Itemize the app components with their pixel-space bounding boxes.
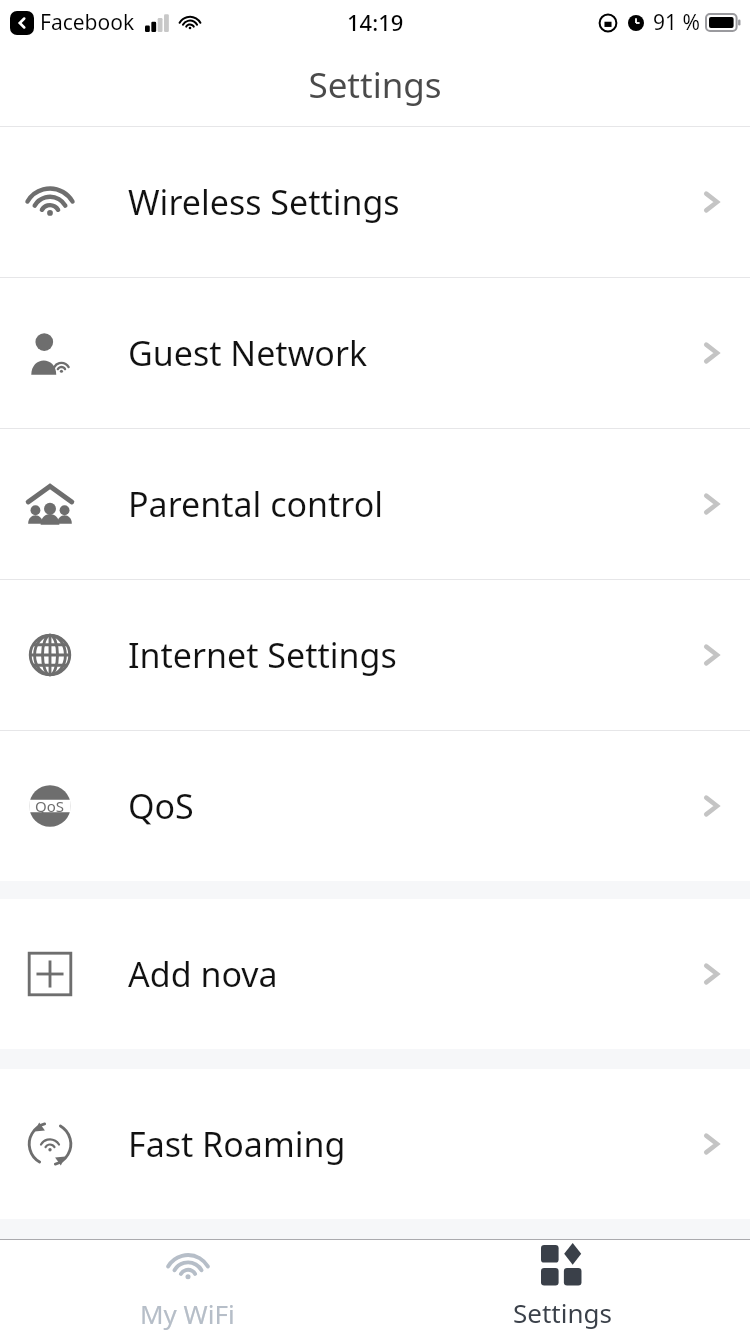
staticText: Internet Settings: [128, 632, 397, 678]
button[interactable]: QoS: [0, 731, 750, 881]
button[interactable]: Add nova: [0, 899, 750, 1049]
staticText: My WiFi: [140, 1296, 235, 1331]
staticText: Settings: [308, 61, 442, 109]
button[interactable]: Fast Roaming: [0, 1069, 750, 1219]
button[interactable]: Guest Network: [0, 278, 750, 428]
staticText: QoS: [35, 796, 65, 816]
staticText: Guest Network: [128, 330, 368, 376]
staticText: 14:19: [347, 7, 404, 37]
button[interactable]: Internet Settings: [0, 580, 750, 730]
staticText: Fast Roaming: [128, 1121, 346, 1167]
staticText: Settings: [513, 1295, 612, 1330]
staticText: Parental control: [128, 481, 384, 527]
button[interactable]: My WiFi: [0, 1240, 375, 1334]
button[interactable]: Settings: [375, 1240, 750, 1334]
staticText: Add nova: [128, 951, 278, 997]
button[interactable]: Wireless Settings: [0, 127, 750, 277]
button[interactable]: Parental control: [0, 429, 750, 579]
staticText: QoS: [128, 783, 194, 829]
staticText: 91 %: [653, 8, 700, 37]
staticText: Wireless Settings: [128, 179, 400, 225]
staticText: Facebook: [40, 8, 135, 37]
